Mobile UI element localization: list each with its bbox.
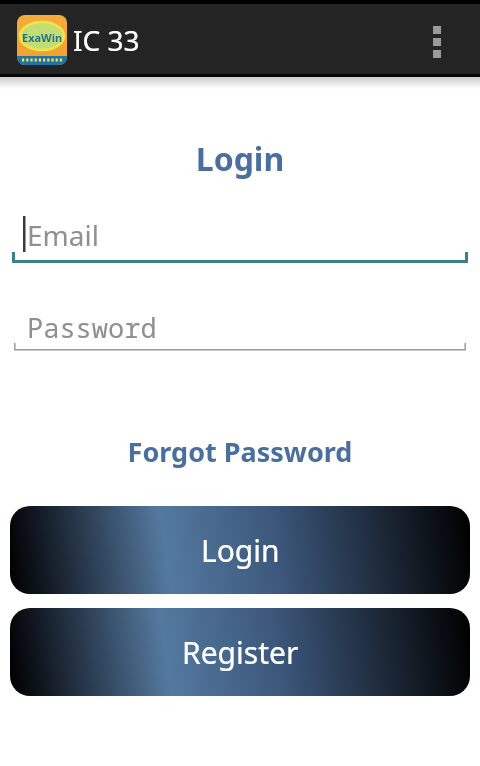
- staticText: Login: [0, 137, 480, 181]
- button[interactable]: ExaWin: [17, 15, 67, 65]
- button[interactable]: Email: [12, 205, 468, 265]
- staticText: ExaWin: [22, 30, 63, 45]
- staticText: Password: [27, 309, 157, 346]
- button[interactable]: Password: [12, 296, 468, 354]
- staticText: Register: [182, 632, 299, 673]
- button[interactable]: Forgot Password: [0, 433, 480, 470]
- button[interactable]: Register: [10, 608, 470, 696]
- button[interactable]: [420, 0, 480, 77]
- staticText: IC 33: [73, 21, 140, 59]
- staticText: Login: [201, 530, 280, 571]
- staticText: Email: [27, 216, 99, 254]
- button[interactable]: Login: [10, 506, 470, 594]
